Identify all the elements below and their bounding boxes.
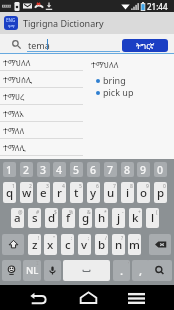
button[interactable]: o — [137, 182, 150, 203]
staticText: 7 — [113, 183, 116, 190]
button[interactable]: g — [79, 208, 92, 228]
staticText: ENG — [6, 17, 16, 23]
button[interactable]: 6 — [87, 162, 100, 177]
staticText: 2 — [29, 183, 32, 190]
button[interactable]: h — [95, 208, 108, 228]
staticText: ተማህሰሊ — [3, 74, 33, 85]
button[interactable]: j — [112, 208, 125, 228]
button[interactable]: Search — [147, 260, 172, 281]
button[interactable]: 1 — [3, 162, 16, 177]
button[interactable]: t — [70, 182, 83, 203]
button[interactable]: v — [78, 234, 91, 255]
staticText: y — [90, 185, 97, 201]
staticText: k — [132, 210, 139, 226]
staticText: + — [138, 209, 141, 216]
staticText: 1 — [12, 183, 15, 190]
button[interactable]: 7 — [104, 162, 117, 177]
staticText: w — [22, 185, 32, 201]
button[interactable]: q — [3, 182, 16, 203]
staticText: 3 — [46, 183, 49, 190]
button[interactable]: ተማለለ — [0, 122, 83, 139]
button[interactable]: i — [121, 182, 134, 203]
staticText: a — [14, 210, 21, 226]
button[interactable]: 8 — [121, 162, 134, 177]
staticText: 8 — [124, 163, 131, 177]
button[interactable]: Home — [68, 285, 108, 310]
button[interactable]: NL — [23, 260, 41, 281]
button[interactable]: u — [104, 182, 117, 203]
staticText: ’ — [128, 261, 129, 268]
button[interactable]: 9 — [137, 162, 150, 177]
staticText: & — [87, 209, 91, 216]
button[interactable]: Shift — [2, 234, 24, 255]
button[interactable]: y — [87, 182, 100, 203]
button[interactable]: b — [95, 234, 108, 255]
staticText: c — [65, 237, 71, 253]
button[interactable]: w — [20, 182, 33, 203]
staticText: n — [115, 237, 123, 253]
staticText: 5 — [73, 163, 80, 177]
button[interactable]: 5 — [70, 162, 83, 177]
staticText: t — [74, 185, 79, 201]
button[interactable]: f — [62, 208, 75, 228]
staticText: 9 — [140, 163, 147, 177]
button[interactable]: r — [53, 182, 66, 203]
button[interactable]: z — [28, 234, 41, 255]
staticText: pick up — [103, 86, 134, 98]
staticText: ተማህለለ — [91, 59, 119, 70]
button[interactable]: m — [128, 234, 141, 255]
button[interactable]: , — [132, 260, 149, 281]
button[interactable]: ተማህሰሊ — [0, 71, 83, 88]
staticText: ; — [88, 235, 90, 242]
staticText: # — [36, 209, 40, 216]
button[interactable]: p — [154, 182, 167, 203]
button[interactable]: . — [113, 260, 130, 281]
staticText: ! — [38, 235, 40, 242]
staticText: ተማሀረ — [3, 91, 25, 102]
button[interactable]: 3 — [37, 162, 50, 177]
button[interactable]: Backspace — [149, 234, 171, 255]
button[interactable]: s — [28, 208, 41, 228]
button[interactable]: ተማሀረ — [0, 88, 83, 105]
staticText: / — [105, 235, 107, 242]
button[interactable]: e — [37, 182, 50, 203]
staticText: 21:44 — [147, 1, 168, 12]
button[interactable]: a — [11, 208, 24, 228]
staticText: 4 — [56, 163, 63, 177]
button[interactable]: ትግርኛ — [122, 39, 168, 52]
staticText: 6 — [90, 163, 97, 177]
button[interactable]: n — [112, 234, 125, 255]
staticText: ⌶ — [36, 261, 40, 266]
button[interactable]: 2 — [20, 162, 33, 177]
button[interactable]: ተማለሊ — [0, 139, 83, 156]
button[interactable]: x — [44, 234, 57, 255]
staticText: 2 — [23, 163, 30, 177]
button[interactable]: 4 — [53, 162, 66, 177]
button[interactable]: Emoji — [2, 260, 21, 281]
staticText: % — [69, 209, 74, 216]
staticText: @ — [18, 209, 23, 216]
staticText: ( — [156, 209, 158, 216]
staticText: q — [6, 185, 14, 201]
button[interactable]: c — [61, 234, 74, 255]
button[interactable]: ተማአለ — [0, 156, 83, 173]
staticText: x — [47, 237, 54, 253]
button[interactable]: ተማህለለ — [0, 54, 83, 71]
button[interactable]: d — [45, 208, 58, 228]
button[interactable]: k — [129, 208, 142, 228]
button[interactable]: 0 — [154, 162, 167, 177]
button[interactable]: Back — [18, 285, 58, 310]
staticText: tema — [28, 39, 50, 51]
staticText: 0 — [157, 163, 164, 177]
staticText: : — [71, 235, 73, 242]
staticText: NL — [26, 264, 39, 277]
button[interactable]: Recent apps — [116, 285, 156, 310]
staticText: d — [48, 210, 56, 226]
button[interactable]: Voice input — [44, 260, 61, 281]
button[interactable]: ተማለአ — [0, 105, 83, 122]
staticText: ? — [121, 235, 124, 242]
button[interactable]: Space — [63, 260, 110, 281]
staticText: $ — [54, 209, 57, 216]
staticText: f — [66, 210, 71, 226]
button[interactable]: l — [146, 208, 159, 228]
